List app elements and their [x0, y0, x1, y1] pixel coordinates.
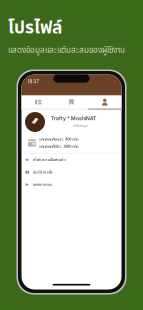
button[interactable]: ประวัติการสั่ง [21, 166, 121, 178]
staticText: แต้มสะสมทั้งหมด : 400 แต้ม [39, 136, 78, 142]
staticText: แต้มสะสมที่ใช้ไป : 2880 แต้ม [39, 143, 78, 149]
staticText: แสดงข้อมูลและแต้มสะสมของผู้ใช้งาน [8, 44, 125, 56]
staticText: ออกจากระบบ [33, 182, 52, 188]
button[interactable]: Shop [22, 95, 55, 109]
button[interactable]: ออกจากระบบ [21, 178, 121, 191]
staticText: Trafty * MoshiNAT [51, 115, 96, 121]
staticText: แก้ไขข้อมูล [72, 123, 87, 129]
staticText: ประวัติการสั่ง [33, 169, 53, 175]
button[interactable]: ตั้งค่าความเป็นส่วนตัว [21, 154, 121, 166]
button[interactable]: Saved [55, 95, 88, 109]
staticText: 18:37 [27, 79, 38, 84]
staticText: ตั้งค่าความเป็นส่วนตัว [33, 157, 66, 163]
staticText: โปรไฟล์ [8, 15, 62, 41]
button[interactable]: แก้ไขข้อมูล [59, 123, 87, 129]
button[interactable]: Profile [88, 95, 121, 109]
